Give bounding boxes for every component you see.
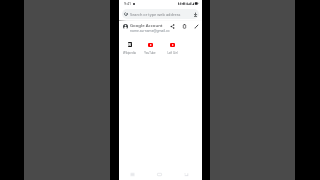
button[interactable]: Share: [170, 24, 175, 29]
staticText: name.surname@gmail.com: [130, 28, 170, 32]
button[interactable]: Search or type web address: [122, 9, 199, 19]
staticText: Lofi Girl: [167, 51, 178, 55]
button[interactable]: Back: [184, 172, 189, 177]
staticText: Google Account: [130, 22, 163, 28]
button[interactable]: Google Account: [119, 21, 202, 32]
button[interactable]: Edit: [194, 24, 199, 29]
button[interactable]: YouTube: [139, 41, 161, 55]
staticText: 9:41: [124, 1, 132, 6]
button[interactable]: Home: [157, 172, 162, 177]
button[interactable]: Copy link: [182, 24, 187, 29]
button[interactable]: Lofi Girl: [161, 41, 184, 55]
button[interactable]: W: [120, 41, 139, 55]
staticText: Search or type web address: [130, 12, 181, 17]
button[interactable]: Downloads: [194, 12, 197, 17]
staticText: YouTube: [144, 51, 156, 55]
button[interactable]: Recents: [130, 172, 135, 177]
staticText: W: [128, 43, 132, 47]
staticText: Wikipedia: [123, 51, 136, 55]
